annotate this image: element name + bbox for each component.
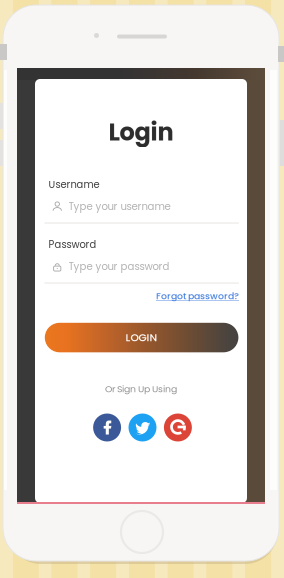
button[interactable]: Sign up with Twitter	[128, 413, 156, 441]
staticText: Type your password	[68, 259, 169, 274]
staticText: Login	[108, 115, 173, 149]
button[interactable]: Sign up with Facebook	[93, 413, 121, 441]
staticText: Forgot password?	[156, 289, 239, 303]
staticText: Or Sign Up Using	[105, 382, 177, 396]
staticText: LOGIN	[126, 330, 158, 345]
staticText: Username	[48, 178, 99, 191]
staticText: Password	[48, 238, 96, 251]
button[interactable]: Forgot password?	[156, 289, 239, 303]
button[interactable]: LOGIN	[45, 323, 238, 352]
staticText: Type your username	[68, 199, 170, 214]
button[interactable]: Sign up with Google	[164, 413, 192, 441]
